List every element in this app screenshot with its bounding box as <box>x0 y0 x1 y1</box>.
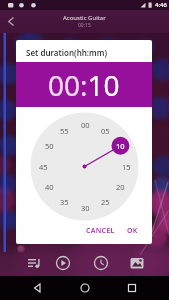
button[interactable] <box>27 278 47 298</box>
staticText: 00 <box>81 120 90 130</box>
button[interactable]: 10 <box>111 140 129 152</box>
staticText: OK <box>127 226 138 236</box>
staticText: Set duration(hh:mm) <box>26 47 108 58</box>
staticText: 15 <box>122 162 131 172</box>
staticText: CANCEL <box>86 226 115 236</box>
button[interactable] <box>122 278 142 298</box>
staticText: 50 <box>45 141 54 151</box>
staticText: 35 <box>60 197 69 207</box>
staticText: 4:46 <box>155 1 167 9</box>
button[interactable]: OK <box>121 223 143 238</box>
button[interactable] <box>26 255 42 271</box>
button[interactable] <box>93 255 109 271</box>
button[interactable] <box>0 10 20 33</box>
button[interactable] <box>55 255 71 271</box>
button[interactable] <box>129 255 145 271</box>
staticText: 10 <box>116 141 125 151</box>
staticText: 05 <box>101 126 110 136</box>
staticText: 00:10 <box>48 66 120 104</box>
staticText: 40 <box>45 182 54 192</box>
staticText: 25 <box>101 197 110 207</box>
staticText: 45 <box>39 162 48 172</box>
staticText: 30 <box>81 203 90 213</box>
button[interactable]: CANCEL <box>82 223 118 238</box>
staticText: 20 <box>116 182 125 192</box>
staticText: 00:15 <box>78 22 91 29</box>
button[interactable] <box>75 278 95 298</box>
staticText: 55 <box>60 126 69 136</box>
staticText: Acoustic Guitar <box>63 14 106 22</box>
